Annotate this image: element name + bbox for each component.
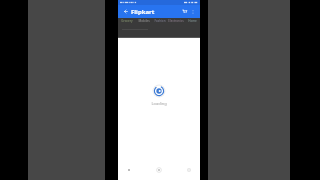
- button[interactable]: Back: [124, 165, 134, 175]
- staticText: Home: [188, 19, 197, 23]
- button[interactable]: More options: [189, 8, 197, 16]
- staticText: Flipkart: [131, 8, 155, 16]
- button[interactable]: Electronics: [168, 18, 184, 24]
- staticText: Electronics: [168, 19, 184, 23]
- button[interactable]: Recent apps: [184, 165, 194, 175]
- staticText: Grocery: [121, 19, 133, 23]
- staticText: Mobiles: [138, 19, 150, 23]
- button[interactable]: Mobiles: [135, 18, 152, 24]
- button[interactable]: Cart: [180, 7, 189, 16]
- button[interactable]: Home: [184, 18, 200, 24]
- button[interactable]: Back: [121, 7, 130, 16]
- button[interactable]: Home: [154, 165, 164, 175]
- staticText: Fashion: [154, 19, 166, 23]
- button[interactable]: Fashion: [152, 18, 168, 24]
- button[interactable]: Grocery: [118, 18, 135, 24]
- staticText: Loading: [151, 101, 167, 106]
